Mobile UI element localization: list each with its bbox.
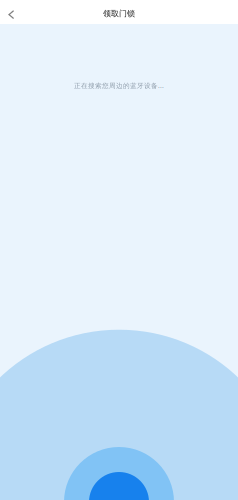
staticText: 正在搜索您周边的蓝牙设备... [74, 81, 164, 90]
staticText: 领取门锁 [103, 9, 135, 18]
button[interactable]: 返回 [0, 0, 24, 24]
